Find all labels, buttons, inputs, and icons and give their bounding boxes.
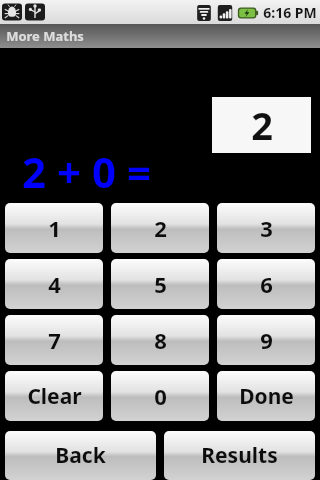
other: Battery charging — [237, 5, 259, 21]
staticText: 2 + 0 = — [22, 143, 151, 200]
other: Signal strength — [216, 4, 234, 22]
button[interactable]: 6 — [217, 259, 315, 309]
staticText: 8 — [154, 325, 167, 355]
button[interactable]: 5 — [111, 259, 209, 309]
button[interactable]: 0 — [111, 371, 209, 421]
staticText: 3 — [260, 213, 273, 243]
staticText: Results — [201, 441, 278, 470]
staticText: 2 — [251, 99, 273, 151]
staticText: 6:16 PM — [263, 3, 317, 22]
staticText: 5 — [154, 269, 167, 299]
staticText: 6 — [260, 269, 273, 299]
staticText: Clear — [27, 382, 82, 411]
other: Debug — [2, 2, 22, 22]
staticText: 1 — [48, 213, 61, 243]
button[interactable]: 2 — [111, 203, 209, 253]
staticText: 4 — [48, 269, 61, 299]
staticText: Done — [239, 382, 294, 411]
staticText: 0 — [154, 381, 167, 411]
staticText: 9 — [260, 325, 273, 355]
button[interactable]: 8 — [111, 315, 209, 365]
staticText: 7 — [48, 325, 61, 355]
button[interactable]: 9 — [217, 315, 315, 365]
staticText: 2 — [154, 213, 167, 243]
button[interactable]: 4 — [5, 259, 103, 309]
button[interactable]: Back — [5, 431, 156, 480]
staticText: Back — [55, 441, 106, 470]
button[interactable]: Results — [164, 431, 315, 480]
button[interactable]: 7 — [5, 315, 103, 365]
button[interactable]: 1 — [5, 203, 103, 253]
button[interactable]: 3 — [217, 203, 315, 253]
other: USB connected — [25, 2, 45, 22]
staticText: More Maths — [6, 27, 84, 45]
other: Wi-Fi — [195, 4, 213, 22]
button[interactable]: Clear — [5, 371, 103, 421]
button[interactable]: Done — [217, 371, 315, 421]
